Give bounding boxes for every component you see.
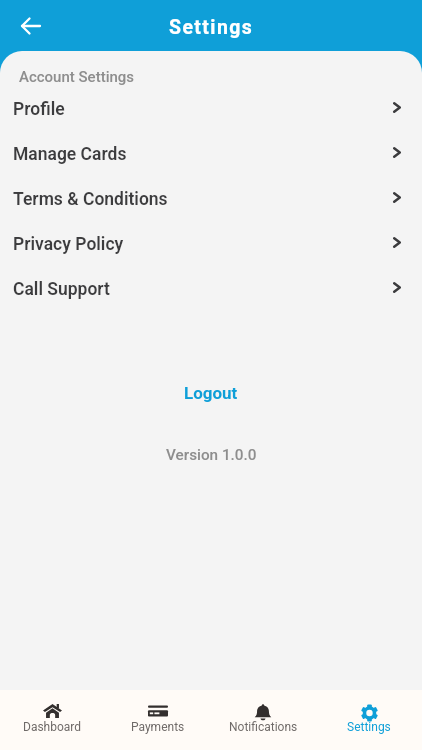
- staticText: Manage Cards: [13, 144, 127, 165]
- button[interactable]: Dashboard: [0, 690, 105, 750]
- staticText: Settings: [347, 720, 391, 734]
- button[interactable]: Manage Cards: [0, 132, 422, 177]
- staticText: Payments: [131, 720, 185, 734]
- button[interactable]: Logout: [166, 378, 256, 408]
- staticText: Call Support: [13, 279, 110, 300]
- button[interactable]: Payments: [105, 690, 210, 750]
- staticText: Version 1.0.0: [166, 446, 257, 464]
- button[interactable]: Privacy Policy: [0, 222, 422, 267]
- button[interactable]: Back: [10, 5, 52, 47]
- staticText: Notifications: [229, 720, 298, 734]
- staticText: Profile: [13, 99, 65, 120]
- button[interactable]: Settings: [316, 690, 422, 750]
- staticText: Account Settings: [19, 68, 135, 86]
- button[interactable]: Call Support: [0, 267, 422, 312]
- button[interactable]: Notifications: [210, 690, 316, 750]
- staticText: Settings: [169, 16, 254, 39]
- button[interactable]: Profile: [0, 87, 422, 132]
- staticText: Privacy Policy: [13, 234, 124, 255]
- staticText: Dashboard: [23, 720, 82, 734]
- staticText: Terms & Conditions: [13, 189, 168, 210]
- button[interactable]: Terms & Conditions: [0, 177, 422, 222]
- staticText: Logout: [184, 383, 238, 403]
